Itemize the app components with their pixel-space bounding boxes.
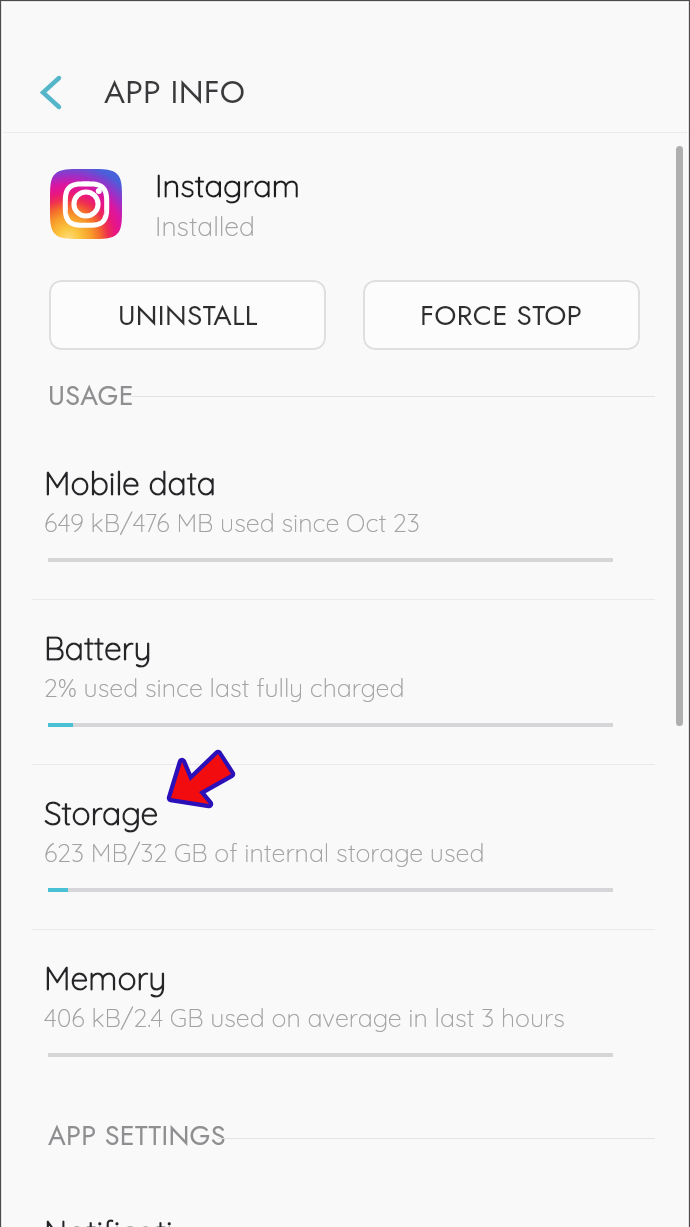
staticText: Battery (44, 628, 152, 668)
button[interactable] (2, 595, 690, 755)
button[interactable]: FORCE STOP (363, 280, 640, 350)
button[interactable] (2, 430, 690, 590)
staticText: 623 MB/32 GB of internal storage used (44, 837, 485, 868)
button[interactable] (2, 925, 690, 1085)
staticText: Memory (44, 958, 167, 998)
staticText: APP INFO (104, 69, 246, 115)
staticText: UNINSTALL (118, 295, 258, 335)
staticText: Notificati (44, 1212, 173, 1227)
staticText: Mobile data (44, 463, 217, 503)
button[interactable] (2, 760, 690, 920)
button[interactable]: UNINSTALL (49, 280, 326, 350)
staticText: Installed (155, 209, 255, 242)
button[interactable]: Back (18, 63, 78, 123)
other: Annotation arrow (2, 3, 690, 1227)
staticText: 649 kB/476 MB used since Oct 23 (44, 507, 420, 538)
staticText: 2% used since last fully charged (44, 672, 405, 703)
staticText: Instagram (155, 166, 300, 205)
staticText: APP SETTINGS (48, 1116, 226, 1155)
staticText: USAGE (48, 376, 134, 415)
staticText: Storage (44, 793, 159, 833)
staticText: FORCE STOP (420, 295, 583, 335)
staticText: 406 kB/2.4 GB used on average in last 3 … (44, 1002, 565, 1033)
